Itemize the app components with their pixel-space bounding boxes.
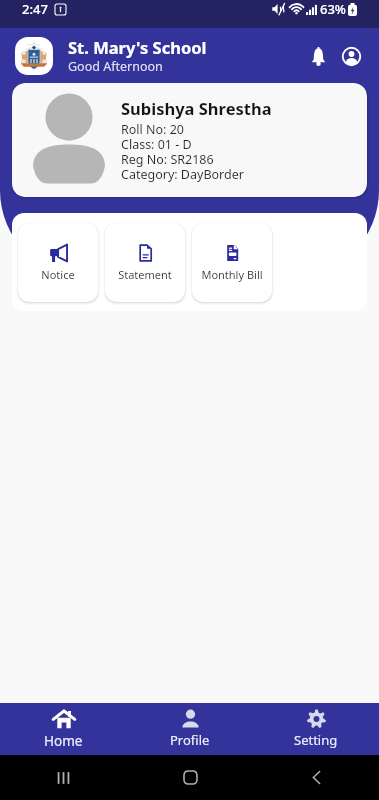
button[interactable]: Account [334, 39, 368, 73]
staticText: Roll No: 20 [121, 121, 185, 138]
staticText: Good Afternoon [68, 58, 163, 75]
staticText: 2:47 [22, 0, 48, 18]
staticText: Profile [170, 731, 210, 749]
button[interactable]: Profile [127, 703, 253, 755]
button[interactable]: Statement [105, 223, 185, 302]
staticText: Subishya Shrestha [121, 97, 272, 119]
button[interactable]: Notifications [286, 39, 326, 73]
staticText: 63% [320, 0, 346, 18]
button[interactable]: Monthly Bill [192, 223, 272, 302]
button[interactable]: Notice [18, 223, 98, 302]
button[interactable]: School logo [15, 37, 53, 75]
staticText: Notice [41, 267, 75, 282]
staticText: Category: DayBorder [121, 166, 244, 183]
staticText: Home [44, 732, 83, 750]
button[interactable]: Setting [253, 703, 379, 755]
button[interactable]: Home [127, 755, 253, 800]
staticText: Reg No: SR2186 [121, 151, 214, 168]
button[interactable]: Home [0, 703, 127, 755]
staticText: Statement [118, 267, 172, 282]
staticText: St. Mary's School [68, 36, 207, 58]
button[interactable]: Subishya Shrestha [12, 83, 367, 197]
staticText: Monthly Bill [201, 267, 263, 282]
button[interactable]: Back [253, 755, 379, 800]
button[interactable]: Recents [0, 755, 127, 800]
staticText: Class: 01 - D [121, 136, 192, 153]
staticText: Setting [294, 731, 338, 749]
